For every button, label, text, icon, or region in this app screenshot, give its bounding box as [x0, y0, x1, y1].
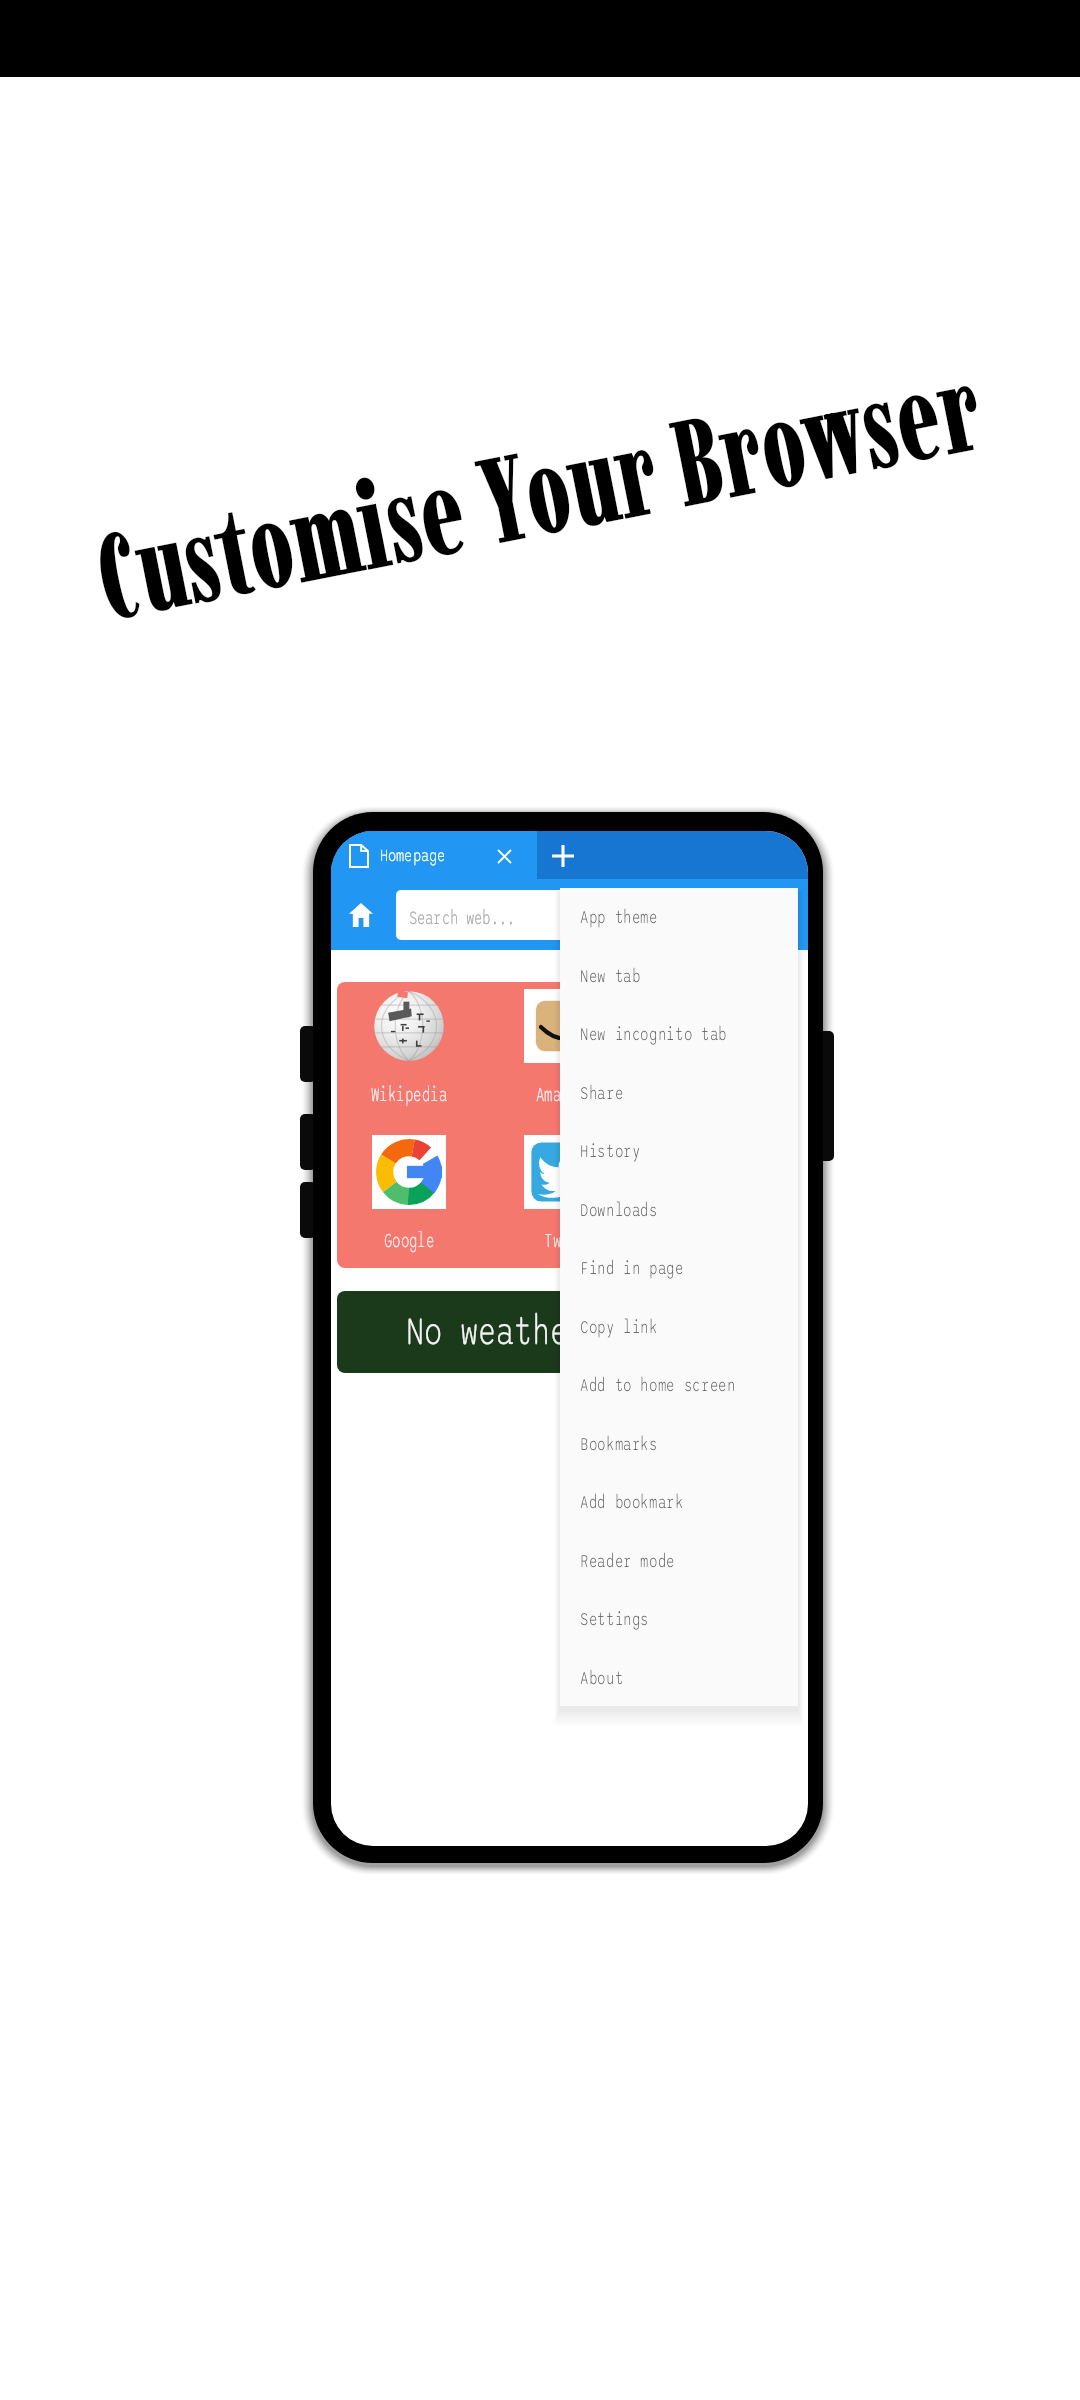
- button[interactable]: History: [560, 1124, 798, 1183]
- button[interactable]: Downloads: [560, 1183, 798, 1242]
- button[interactable]: Reader mode: [560, 1534, 798, 1593]
- button[interactable]: Settings: [560, 1592, 798, 1651]
- button[interactable]: Wikipedia: [337, 982, 491, 1125]
- button[interactable]: Copy link: [560, 1300, 798, 1359]
- button[interactable]: Twtr: [491, 1125, 645, 1268]
- button[interactable]: Search web: [396, 890, 794, 940]
- button[interactable]: Close tab: [486, 831, 537, 879]
- button[interactable]: New tab: [537, 831, 589, 879]
- button[interactable]: About: [560, 1651, 798, 1710]
- button[interactable]: Add to home screen: [560, 1358, 798, 1417]
- button[interactable]: Facebook: [644, 982, 798, 1125]
- button[interactable]: Bookmarks: [560, 1417, 798, 1476]
- button[interactable]: Homepage tab: [331, 831, 537, 879]
- button[interactable]: Find in page: [560, 1241, 798, 1300]
- button[interactable]: Amazon: [491, 982, 645, 1125]
- button[interactable]: Reddit: [644, 1125, 798, 1268]
- button[interactable]: Home: [337, 885, 393, 945]
- button[interactable]: App theme: [560, 890, 798, 949]
- button[interactable]: New tab: [560, 949, 798, 1008]
- button[interactable]: Google: [337, 1125, 491, 1268]
- button[interactable]: No weather data: [337, 1291, 798, 1373]
- button[interactable]: Add bookmark: [560, 1475, 798, 1534]
- button[interactable]: Share: [560, 1066, 798, 1125]
- button[interactable]: New incognito tab: [560, 1007, 798, 1066]
